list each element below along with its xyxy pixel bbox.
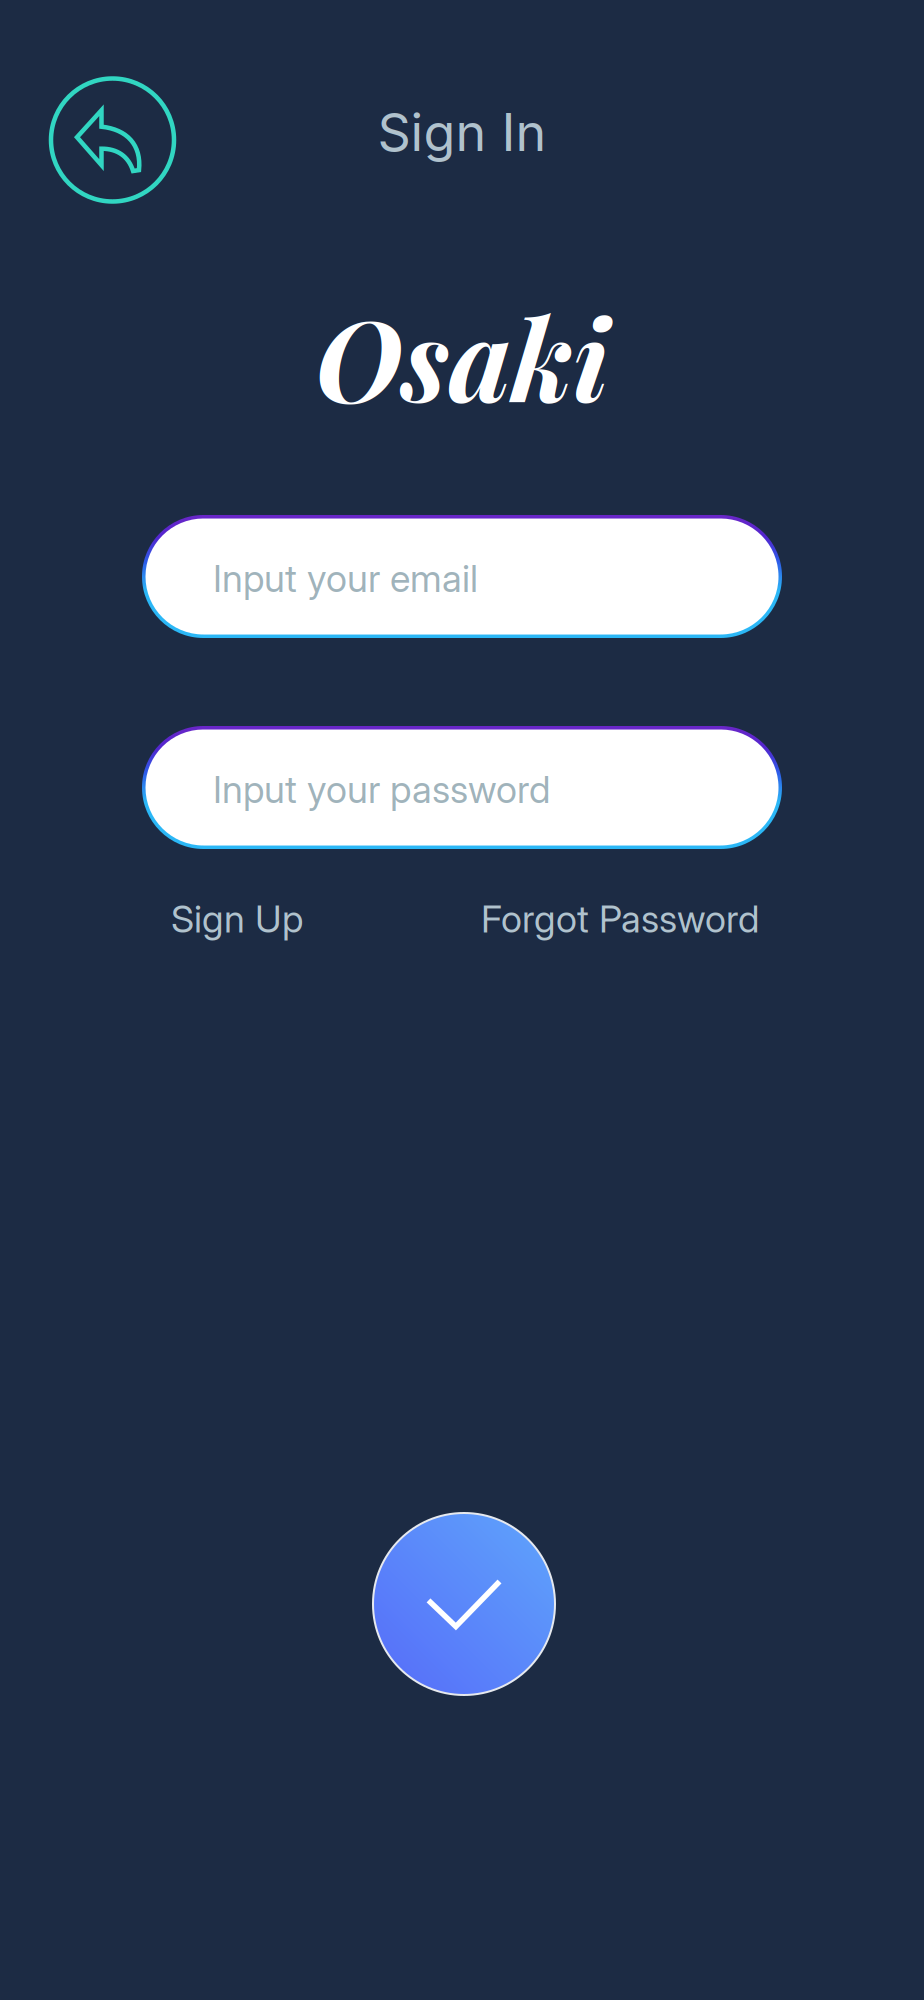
staticText: Input your password — [213, 767, 550, 812]
button[interactable]: Input your email — [142, 515, 782, 638]
button[interactable]: Input your password — [142, 726, 782, 849]
staticText: Forgot Password — [481, 896, 759, 942]
staticText: Sign In — [377, 100, 546, 163]
staticText: Osaki — [315, 281, 609, 431]
button[interactable]: Back — [51, 78, 174, 202]
staticText: Sign Up — [171, 896, 303, 942]
button[interactable]: Forgot Password — [481, 896, 759, 942]
button[interactable]: Submit — [373, 1513, 555, 1695]
button[interactable]: Sign Up — [171, 896, 303, 942]
staticText: Input your email — [213, 556, 478, 601]
